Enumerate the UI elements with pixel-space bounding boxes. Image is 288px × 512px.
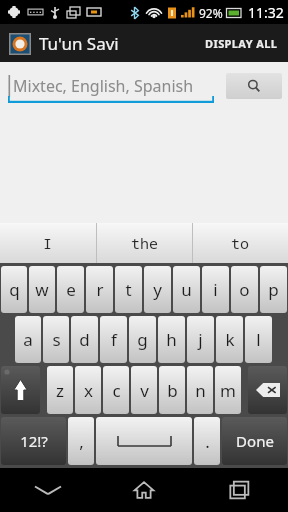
staticText: g [137,328,148,351]
staticText: , [79,430,84,453]
button[interactable]: y [144,266,171,313]
staticText: DISPLAY ALL [205,36,278,51]
button[interactable]: the [97,223,192,263]
button[interactable]: q [1,266,27,313]
button[interactable]: v [131,366,157,414]
button[interactable]: Shift [1,366,40,414]
staticText: x [84,379,93,402]
button[interactable]: o [231,266,258,313]
staticText: i [213,278,218,301]
button[interactable]: Tu'un Savi [9,32,119,55]
button[interactable]: . [194,417,220,465]
button[interactable]: c [103,366,129,414]
button[interactable]: Space [96,417,192,465]
button[interactable]: 12!? [1,417,66,465]
button[interactable]: Recent apps [192,468,288,512]
button[interactable]: p [260,266,287,313]
staticText: 12!? [20,431,48,451]
staticText: . [205,430,210,453]
button[interactable]: j [187,316,214,363]
staticText: o [239,278,250,301]
button[interactable]: i [202,266,229,313]
staticText: the [131,233,159,253]
button[interactable]: to [193,223,288,263]
button[interactable]: e [57,266,84,313]
staticText: Done [236,431,274,451]
button[interactable]: Backspace [248,366,287,414]
button[interactable]: I [0,223,96,263]
button[interactable]: n [187,366,213,414]
button[interactable]: l [245,316,272,363]
staticText: t [125,278,132,301]
button[interactable]: f [100,316,127,363]
staticText: q [9,278,20,301]
button[interactable]: u [173,266,200,313]
staticText: y [153,278,162,301]
button[interactable]: h [158,316,185,363]
button[interactable]: Mixtec, English, Spanish [8,69,214,103]
button[interactable]: z [47,366,73,414]
button[interactable]: r [86,266,113,313]
staticText: 11:32 [248,3,284,22]
button[interactable]: s [43,316,69,363]
staticText: e [66,278,76,301]
staticText: l [256,328,261,351]
button[interactable]: g [129,316,156,363]
button[interactable]: w [29,266,55,313]
button[interactable]: Search [226,73,282,99]
button[interactable]: Home [96,468,192,512]
staticText: r [96,278,104,301]
staticText: Mixtec, English, Spanish [13,75,194,97]
button[interactable]: k [216,316,243,363]
staticText: s [52,328,61,351]
staticText: f [111,328,117,351]
staticText: Tu'un Savi [39,32,119,55]
staticText: b [167,379,178,402]
staticText: c [112,379,121,402]
button[interactable]: b [159,366,185,414]
staticText: w [35,278,49,301]
staticText: a [23,328,33,351]
staticText: p [268,278,279,301]
staticText: to [231,233,250,253]
button[interactable]: a [15,316,41,363]
button[interactable]: t [115,266,142,313]
staticText: I [43,233,53,253]
button[interactable]: , [68,417,94,465]
staticText: m [220,379,236,402]
button[interactable]: DISPLAY ALL [195,24,288,62]
staticText: j [198,328,203,351]
staticText: 92% [199,5,223,21]
staticText: z [56,379,64,402]
staticText: h [166,328,177,351]
staticText: n [195,379,206,402]
staticText: u [181,278,192,301]
button[interactable]: m [215,366,241,414]
button[interactable]: Done [222,417,287,465]
staticText: d [79,328,90,351]
staticText: k [225,328,235,351]
button[interactable]: d [71,316,98,363]
button[interactable]: x [75,366,101,414]
button[interactable]: Hide keyboard [0,468,96,512]
staticText: v [140,379,149,402]
